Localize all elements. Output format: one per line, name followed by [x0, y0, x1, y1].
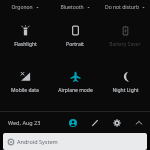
button[interactable]: Orgonon [0, 0, 50, 14]
button[interactable]: Settings [110, 116, 123, 129]
button[interactable]: Battery Saver [100, 23, 150, 56]
staticText: Airplane mode [58, 87, 93, 94]
staticText: Flashlight [14, 41, 37, 48]
button[interactable]: User [66, 116, 79, 129]
button[interactable]: Do not disturb [100, 0, 150, 14]
button[interactable]: Edit [88, 116, 101, 129]
button[interactable]: Night Light [100, 69, 150, 102]
button[interactable]: Airplane mode [50, 69, 100, 102]
staticText: Night Light [112, 87, 139, 94]
button[interactable]: Portrait [50, 23, 100, 56]
staticText: Battery Saver [109, 41, 141, 48]
staticText: Bluetooth [60, 4, 84, 11]
staticText: Do not disturb [105, 4, 139, 11]
staticText: Mobile data [11, 87, 39, 94]
button[interactable]: Mobile data [0, 69, 50, 102]
staticText: Android System [17, 138, 58, 145]
button[interactable]: Flashlight [0, 23, 50, 56]
button[interactable]: Bluetooth [50, 0, 100, 14]
staticText: Orgonon [11, 4, 33, 11]
staticText: Wed, Aug 23 [8, 119, 41, 126]
staticText: Portrait [66, 41, 84, 48]
button[interactable]: Collapse [132, 116, 145, 129]
button[interactable]: Android System [3, 133, 147, 150]
